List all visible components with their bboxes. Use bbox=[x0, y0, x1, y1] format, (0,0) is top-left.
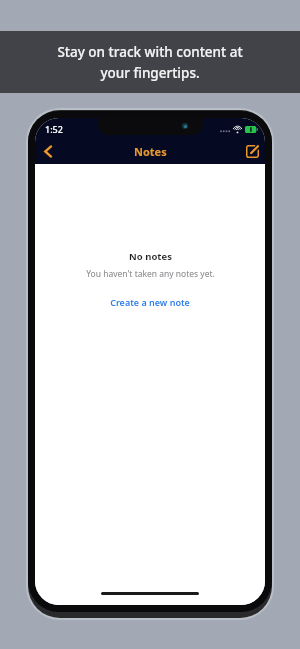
staticText: Stay on track with content at your finge… bbox=[57, 43, 243, 82]
button[interactable]: New note bbox=[239, 138, 265, 164]
staticText: You haven't taken any notes yet. bbox=[86, 268, 215, 280]
button[interactable]: Create a new note bbox=[104, 294, 196, 310]
staticText: 1:52 bbox=[45, 123, 63, 135]
staticText: No notes bbox=[129, 250, 172, 263]
button[interactable]: Back bbox=[35, 138, 61, 164]
staticText: Notes bbox=[134, 144, 167, 159]
staticText: Create a new note bbox=[110, 296, 190, 308]
